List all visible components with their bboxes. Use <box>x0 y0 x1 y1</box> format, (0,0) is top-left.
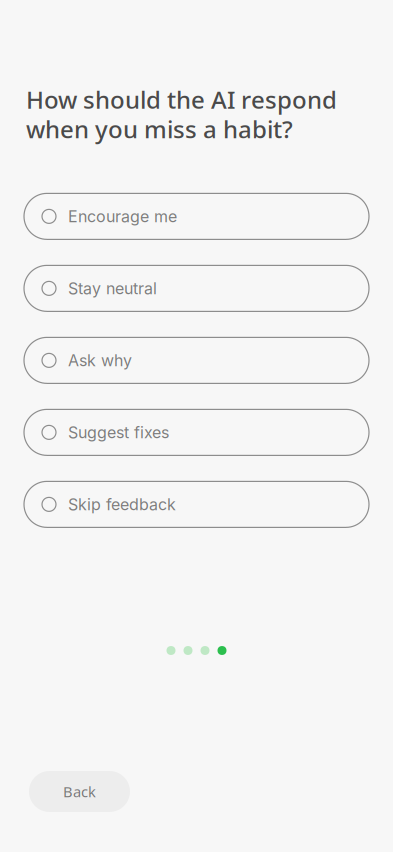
button[interactable]: Skip feedback <box>24 481 369 527</box>
button[interactable]: Encourage me <box>24 193 369 239</box>
button[interactable]: Ask why <box>24 337 369 383</box>
staticText: Skip feedback <box>68 495 176 514</box>
button[interactable]: Back <box>29 771 130 812</box>
staticText: Back <box>63 781 96 801</box>
staticText: Stay neutral <box>68 279 157 298</box>
staticText: Encourage me <box>68 207 177 226</box>
staticText: How should the AI respond when you miss … <box>26 83 337 145</box>
staticText: Ask why <box>68 351 132 370</box>
button[interactable]: Stay neutral <box>24 265 369 311</box>
button[interactable]: Suggest fixes <box>24 409 369 455</box>
staticText: Suggest fixes <box>68 423 169 442</box>
